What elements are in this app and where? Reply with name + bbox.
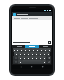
button[interactable]: Shift [13, 56, 18, 60]
button[interactable] [31, 48, 35, 52]
button[interactable] [34, 52, 38, 56]
button[interactable]: Home [30, 65, 34, 69]
button[interactable] [18, 56, 22, 60]
button[interactable] [22, 56, 26, 60]
button[interactable] [39, 48, 43, 52]
button[interactable] [42, 52, 46, 56]
button[interactable]: Space [22, 60, 42, 64]
button[interactable] [35, 48, 39, 52]
button[interactable] [13, 45, 25, 48]
button[interactable]: Back [19, 65, 23, 69]
button[interactable] [16, 48, 19, 52]
other: Attachment [48, 41, 51, 44]
button[interactable] [30, 56, 34, 60]
button[interactable] [19, 48, 23, 52]
button[interactable] [38, 56, 42, 60]
button[interactable] [18, 52, 22, 56]
button[interactable] [42, 56, 46, 60]
button[interactable] [26, 56, 30, 60]
button[interactable] [46, 52, 50, 56]
button[interactable] [26, 52, 30, 56]
button[interactable]: Recents [41, 65, 45, 69]
button[interactable] [23, 48, 27, 52]
button[interactable] [38, 52, 42, 56]
button[interactable] [25, 45, 39, 48]
button[interactable] [18, 60, 22, 64]
button[interactable] [27, 48, 31, 52]
button[interactable] [30, 52, 34, 56]
button[interactable]: Symbols [13, 60, 18, 64]
button[interactable] [47, 48, 51, 52]
button[interactable] [39, 45, 51, 48]
button[interactable] [22, 52, 26, 56]
button[interactable]: App icon [12, 12, 52, 16]
button[interactable] [14, 52, 18, 56]
button[interactable] [43, 48, 47, 52]
button[interactable]: Attachment [12, 40, 52, 44]
button[interactable]: Enter [46, 60, 51, 64]
button[interactable] [12, 16, 52, 20]
button[interactable] [42, 60, 46, 64]
button[interactable] [34, 56, 38, 60]
button[interactable]: Backspace [46, 56, 51, 60]
other: App icon [13, 13, 16, 16]
button[interactable] [13, 48, 16, 52]
